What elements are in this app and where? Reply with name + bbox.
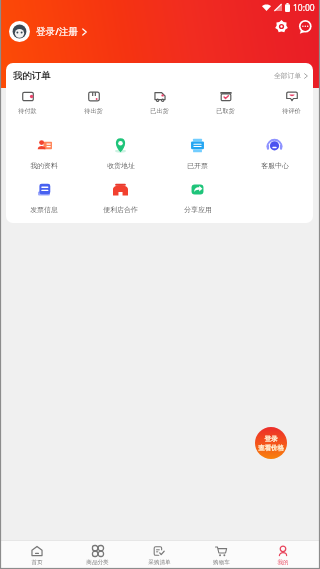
staticText: 查看价格 [258,444,284,452]
staticText: 购物车 [213,559,230,566]
staticText: 待付款 [18,107,37,115]
button[interactable]: 待付款 [15,91,40,115]
staticText: 待出货 [84,107,103,115]
staticText: 我的订单 [13,70,51,82]
button[interactable]: 登录 [255,427,287,459]
button[interactable]: 已开票 [159,137,236,170]
button[interactable]: 购物车 [190,541,252,569]
button[interactable]: Settings [272,17,291,36]
staticText: 全部订单 [274,71,302,80]
staticText: 登录 [264,435,278,443]
button[interactable]: 待评价 [279,91,304,115]
staticText: 10:00 [293,2,315,14]
button[interactable]: 已取货 [213,91,238,115]
button[interactable]: 客服中心 [236,137,313,170]
staticText: 待评价 [282,107,301,115]
button[interactable]: 已出货 [147,91,172,115]
staticText: 我的 [277,559,289,566]
button[interactable]: 待出货 [81,91,106,115]
staticText: 便利店合作 [103,205,138,214]
button[interactable]: 首页 [6,541,67,569]
button[interactable]: 分享应用 [159,181,236,214]
staticText: 发票信息 [30,205,58,214]
button[interactable]: 商品分类 [67,541,128,569]
staticText: 商品分类 [86,559,109,566]
button[interactable]: 登录/注册 [9,21,87,42]
staticText: 客服中心 [261,161,289,170]
button[interactable]: 发票信息 [6,181,82,214]
button[interactable]: 便利店合作 [82,181,159,214]
button[interactable]: 全部订单 [274,71,308,80]
button[interactable]: Messages [295,17,314,36]
staticText: 收货地址 [107,161,135,170]
button[interactable]: 收货地址 [82,137,159,170]
staticText: 已出货 [150,107,169,115]
button[interactable]: 我的 [252,541,314,569]
staticText: 我的资料 [30,161,58,170]
button[interactable]: 采购清单 [128,541,190,569]
staticText: 已开票 [187,161,208,170]
button[interactable]: 我的资料 [6,137,82,170]
staticText: 采购清单 [148,559,171,566]
staticText: 首页 [31,559,43,566]
staticText: 分享应用 [184,205,212,214]
staticText: 登录/注册 [36,25,79,38]
staticText: 已取货 [216,107,235,115]
